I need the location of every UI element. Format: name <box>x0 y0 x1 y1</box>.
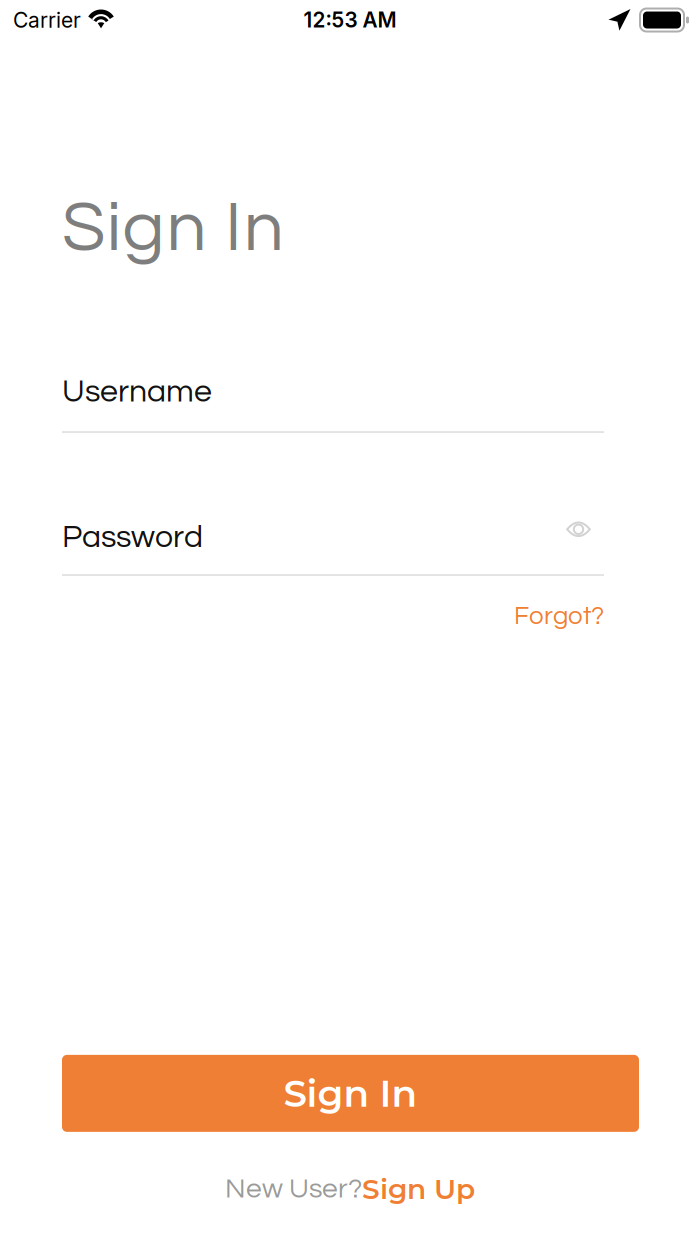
staticText: New User? <box>225 1174 362 1203</box>
staticText: Sign In <box>283 1071 417 1116</box>
staticText: Forgot? <box>514 603 604 629</box>
staticText: 12:53 AM <box>303 7 396 33</box>
staticText: Carrier <box>13 7 81 33</box>
button[interactable]: Sign Up <box>362 1172 475 1206</box>
button[interactable]: Forgot? <box>498 576 604 635</box>
staticText: Username <box>62 375 212 408</box>
staticText: Sign Up <box>362 1172 475 1206</box>
staticText: Password <box>62 521 203 554</box>
button[interactable]: Sign In <box>62 1055 639 1132</box>
button[interactable]: Show password <box>566 520 604 555</box>
staticText: Sign In <box>62 192 284 265</box>
